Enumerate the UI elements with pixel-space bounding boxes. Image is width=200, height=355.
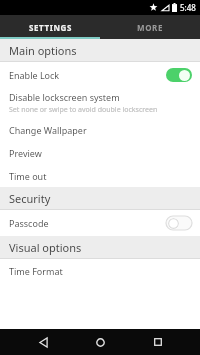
staticText: Time Format (9, 265, 63, 277)
staticText: Set none or swipe to avoid double locksc… (9, 105, 158, 115)
staticText: Visual options (9, 240, 82, 255)
staticText: Passcode (9, 217, 166, 229)
button[interactable]: Passcode (0, 210, 200, 236)
button[interactable]: Change Wallpaper (0, 118, 200, 141)
button[interactable]: Enable Lock (0, 62, 200, 88)
staticText: SETTINGS (29, 22, 72, 33)
staticText: MORE (137, 22, 163, 33)
staticText: Security (9, 191, 51, 206)
staticText: Change Wallpaper (9, 124, 87, 136)
button[interactable]: Recents (143, 329, 173, 355)
button[interactable]: SETTINGS (0, 15, 100, 39)
button[interactable]: Time out (0, 164, 200, 187)
staticText: Enable Lock (9, 69, 166, 81)
button[interactable]: Disable lockscreen system (0, 88, 200, 118)
staticText: Main options (9, 43, 77, 58)
button[interactable]: Time Format (0, 259, 200, 282)
button[interactable]: Preview (0, 141, 200, 164)
button[interactable]: MORE (100, 15, 200, 39)
button[interactable]: Home (85, 329, 115, 355)
other: Off (166, 216, 192, 230)
staticText: Disable lockscreen system (9, 91, 120, 103)
button[interactable]: Back (28, 329, 58, 355)
other: On (166, 68, 192, 82)
staticText: Time out (9, 170, 47, 182)
staticText: 5:48 (180, 2, 196, 13)
staticText: Preview (9, 147, 42, 159)
